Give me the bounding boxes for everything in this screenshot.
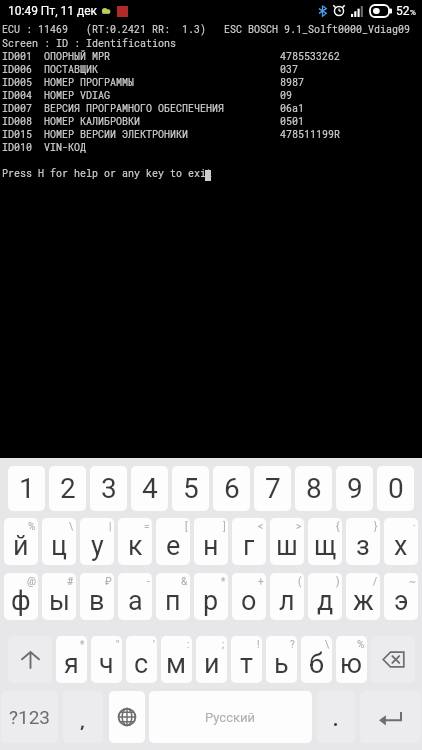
button[interactable]: и xyxy=(196,636,227,683)
staticText: 0 xyxy=(388,472,404,505)
staticText: [ xyxy=(185,521,188,533)
button[interactable]: р xyxy=(194,573,228,620)
staticText: ф xyxy=(11,585,31,617)
button[interactable]: 8 xyxy=(295,466,332,511)
button[interactable]: н xyxy=(194,518,228,565)
button[interactable]: Change language xyxy=(109,691,145,743)
button[interactable]: п xyxy=(156,573,190,620)
button[interactable]: й xyxy=(4,518,38,565)
staticText: % xyxy=(357,639,365,651)
staticText: \ xyxy=(69,521,74,533)
staticText: ю xyxy=(340,648,363,680)
staticText: г xyxy=(243,530,255,562)
staticText: я xyxy=(64,648,79,680)
staticText: д xyxy=(317,585,334,617)
staticText: ? xyxy=(290,639,295,651)
button[interactable]: е xyxy=(156,518,190,565)
button[interactable]: Shift xyxy=(8,636,52,683)
button[interactable]: а xyxy=(118,573,152,620)
button[interactable]: э xyxy=(384,573,418,620)
button[interactable]: Русский xyxy=(149,691,312,743)
staticText: , xyxy=(80,709,86,734)
button[interactable]: Comma xyxy=(63,691,103,743)
button[interactable]: ф xyxy=(4,573,38,620)
staticText: > xyxy=(296,521,302,533)
staticText: " xyxy=(116,639,120,651)
button[interactable]: ш xyxy=(270,518,304,565)
staticText: * xyxy=(221,576,226,588)
staticText: н xyxy=(203,530,219,562)
staticText: р xyxy=(203,585,219,617)
button[interactable]: 1 xyxy=(8,466,45,511)
button[interactable]: 9 xyxy=(336,466,373,511)
button[interactable]: Backspace xyxy=(371,636,415,683)
button[interactable]: л xyxy=(270,573,304,620)
staticText: % xyxy=(410,8,416,17)
staticText: · xyxy=(413,521,416,533)
staticText: е xyxy=(166,530,181,562)
button[interactable]: б xyxy=(301,636,332,683)
staticText: % xyxy=(28,521,36,533)
button[interactable]: 6 xyxy=(213,466,250,511)
button[interactable]: ы xyxy=(42,573,76,620)
staticText: 10:49 Пт, 11 дек xyxy=(8,4,98,18)
staticText: л xyxy=(279,585,295,617)
button[interactable]: о xyxy=(232,573,266,620)
staticText: ж xyxy=(353,585,374,617)
staticText: й xyxy=(13,530,29,562)
button[interactable]: Period xyxy=(317,691,355,743)
button[interactable]: с xyxy=(126,636,157,683)
staticText: х xyxy=(394,530,408,562)
staticText: к xyxy=(128,530,143,562)
staticText: щ xyxy=(314,530,337,562)
button[interactable]: 0 xyxy=(377,466,414,511)
staticText: 52 xyxy=(396,4,410,18)
staticText: 7 xyxy=(265,472,281,505)
button[interactable]: з xyxy=(346,518,380,565)
button[interactable]: ч xyxy=(91,636,122,683)
button[interactable]: к xyxy=(118,518,152,565)
staticText: ! xyxy=(257,639,260,651)
staticText: 4785533262 037 8987 09 06a1 0501 4785111… xyxy=(280,23,341,166)
staticText: + xyxy=(258,576,264,588)
button[interactable]: щ xyxy=(308,518,342,565)
staticText: и xyxy=(204,648,220,680)
staticText: # xyxy=(67,576,74,588)
button[interactable]: 4 xyxy=(131,466,168,511)
button[interactable]: г xyxy=(232,518,266,565)
staticText: = xyxy=(144,521,150,533)
staticText: о xyxy=(241,585,257,617)
staticText: | xyxy=(109,521,112,533)
button[interactable]: у xyxy=(80,518,114,565)
button[interactable]: ?123 xyxy=(1,691,58,743)
button[interactable]: ю xyxy=(336,636,367,683)
button[interactable]: я xyxy=(56,636,87,683)
staticText: & xyxy=(181,576,188,588)
button[interactable]: д xyxy=(308,573,342,620)
button[interactable]: ж xyxy=(346,573,380,620)
button[interactable]: Enter xyxy=(360,691,421,743)
staticText: ы xyxy=(49,585,70,617)
staticText: ~ xyxy=(409,576,416,588)
staticText: 4 xyxy=(142,472,158,505)
staticText: с xyxy=(134,648,149,680)
button[interactable]: ь xyxy=(266,636,297,683)
staticText: ц xyxy=(51,530,68,562)
button[interactable]: т xyxy=(231,636,262,683)
button[interactable]: в xyxy=(80,573,114,620)
button[interactable]: м xyxy=(161,636,192,683)
staticText: } xyxy=(374,521,378,533)
staticText: в xyxy=(89,585,105,617)
button[interactable]: 5 xyxy=(172,466,209,511)
staticText: . xyxy=(333,707,339,732)
button[interactable]: 2 xyxy=(49,466,86,511)
staticText: 5 xyxy=(183,472,199,505)
staticText: ; xyxy=(222,639,225,651)
staticText: ] xyxy=(223,521,226,533)
button[interactable]: х xyxy=(384,518,418,565)
button[interactable]: 3 xyxy=(90,466,127,511)
button[interactable]: ц xyxy=(42,518,76,565)
staticText: п xyxy=(165,585,181,617)
button[interactable]: 7 xyxy=(254,466,291,511)
staticText: з xyxy=(356,530,370,562)
